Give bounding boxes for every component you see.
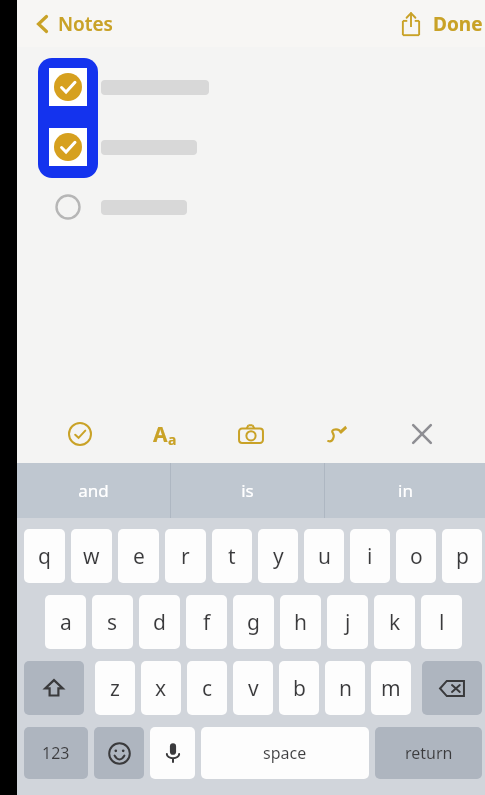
button[interactable] xyxy=(43,125,197,169)
button[interactable]: y xyxy=(258,529,298,583)
button[interactable]: Close keyboard xyxy=(399,411,445,457)
staticText: g xyxy=(247,608,260,637)
button[interactable]: u xyxy=(304,529,344,583)
staticText: v xyxy=(248,674,259,703)
button[interactable]: p xyxy=(442,529,482,583)
staticText: b xyxy=(293,674,306,703)
button[interactable]: x xyxy=(141,661,181,715)
staticText: a xyxy=(60,608,72,637)
button[interactable]: Format text xyxy=(142,411,188,457)
staticText: Notes xyxy=(58,11,113,37)
button[interactable]: w xyxy=(71,529,112,583)
button[interactable] xyxy=(43,185,187,229)
staticText: e xyxy=(133,542,145,571)
staticText: space xyxy=(263,742,307,764)
staticText: i xyxy=(367,542,373,571)
button[interactable]: space xyxy=(201,727,369,779)
staticText: Done xyxy=(433,11,483,37)
staticText: is xyxy=(241,479,254,502)
staticText: t xyxy=(228,542,236,571)
staticText: r xyxy=(181,542,190,571)
button[interactable]: Done xyxy=(433,11,483,37)
button[interactable]: n xyxy=(325,661,365,715)
staticText: p xyxy=(456,542,469,571)
button[interactable]: a xyxy=(45,595,86,649)
button[interactable]: Share xyxy=(389,2,433,46)
button[interactable]: f xyxy=(186,595,227,649)
button[interactable]: q xyxy=(24,529,65,583)
button[interactable]: d xyxy=(139,595,180,649)
staticText: d xyxy=(153,608,166,637)
staticText: k xyxy=(389,608,401,637)
staticText: q xyxy=(38,542,51,571)
button[interactable]: e xyxy=(118,529,159,583)
button[interactable]: c xyxy=(187,661,227,715)
button[interactable]: Notes xyxy=(35,11,113,37)
staticText: h xyxy=(294,608,307,637)
staticText: x xyxy=(155,674,167,703)
button[interactable]: is xyxy=(171,463,324,518)
button[interactable]: r xyxy=(165,529,206,583)
button[interactable]: Backspace xyxy=(422,661,482,715)
staticText: a xyxy=(168,430,177,449)
button[interactable]: return xyxy=(375,727,482,779)
staticText: n xyxy=(339,674,352,703)
button[interactable]: h xyxy=(280,595,321,649)
button[interactable]: o xyxy=(396,529,436,583)
button[interactable]: Emoji xyxy=(94,727,144,779)
staticText: z xyxy=(110,674,120,703)
staticText: j xyxy=(345,608,351,637)
button[interactable]: and xyxy=(17,463,170,518)
button[interactable]: i xyxy=(350,529,390,583)
staticText: 123 xyxy=(42,742,70,764)
staticText: s xyxy=(107,608,118,637)
button[interactable]: j xyxy=(327,595,368,649)
button[interactable]: in xyxy=(325,463,485,518)
button[interactable]: Markup xyxy=(314,411,360,457)
button[interactable]: z xyxy=(95,661,135,715)
staticText: u xyxy=(318,542,331,571)
staticText: m xyxy=(381,674,401,703)
button[interactable]: l xyxy=(421,595,462,649)
staticText: in xyxy=(398,479,413,502)
staticText: A xyxy=(153,420,168,449)
button[interactable]: Camera xyxy=(228,411,274,457)
button[interactable]: 123 xyxy=(24,727,88,779)
staticText: o xyxy=(410,542,423,571)
staticText: return xyxy=(405,742,453,764)
button[interactable]: Shift xyxy=(24,661,84,715)
button[interactable]: Checklist xyxy=(57,411,103,457)
staticText: y xyxy=(273,542,284,571)
button[interactable]: v xyxy=(233,661,273,715)
button[interactable]: s xyxy=(92,595,133,649)
button[interactable]: Dictate xyxy=(150,727,195,779)
button[interactable]: b xyxy=(279,661,319,715)
button[interactable] xyxy=(43,65,209,109)
button[interactable]: g xyxy=(233,595,274,649)
staticText: c xyxy=(202,674,213,703)
staticText: l xyxy=(439,608,445,637)
button[interactable]: m xyxy=(371,661,411,715)
staticText: and xyxy=(78,479,109,502)
staticText: w xyxy=(83,542,100,571)
staticText: f xyxy=(203,608,211,637)
button[interactable]: k xyxy=(374,595,415,649)
button[interactable]: t xyxy=(212,529,252,583)
